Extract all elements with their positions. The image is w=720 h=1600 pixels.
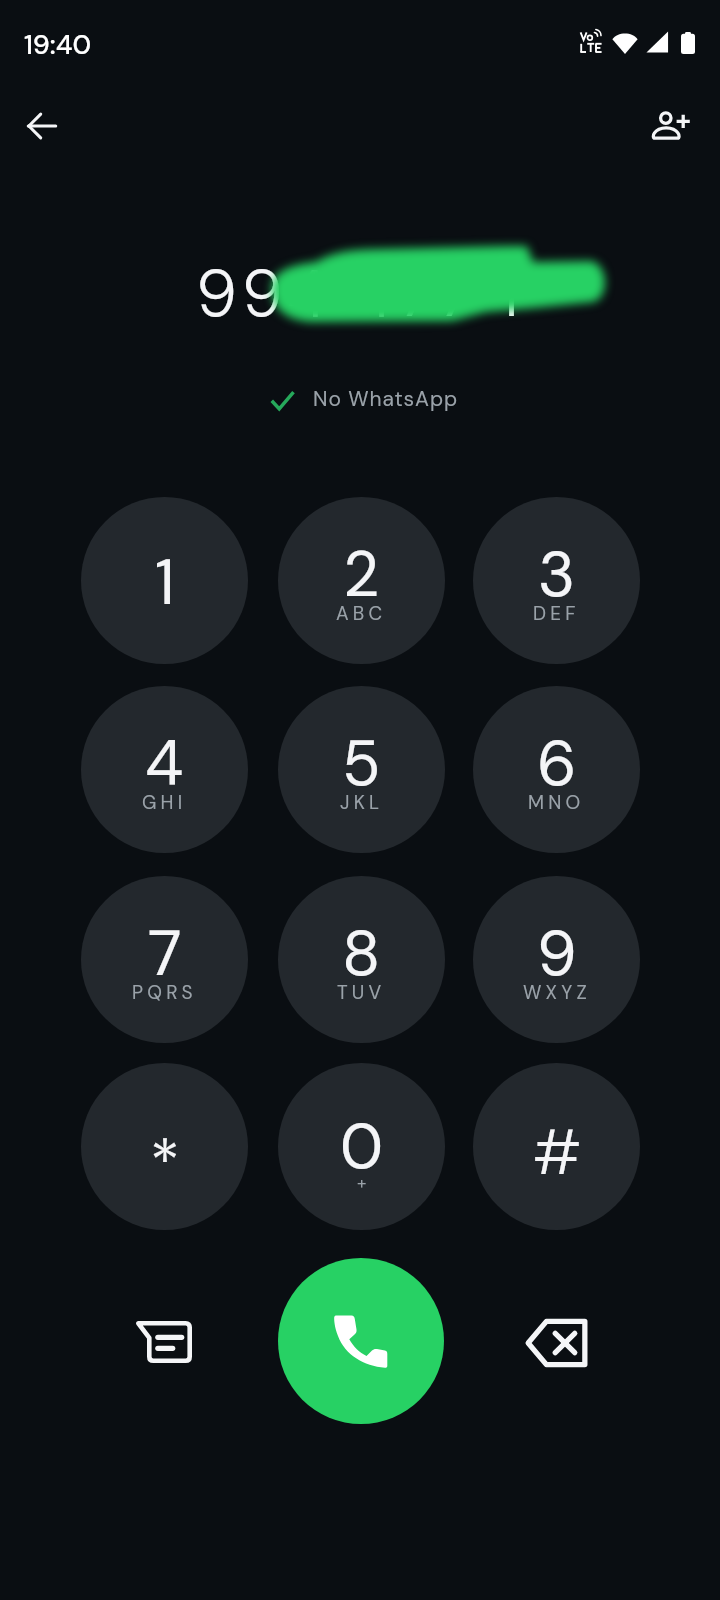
- button[interactable]: 3: [473, 497, 640, 664]
- button[interactable]: Send message: [119, 1297, 209, 1387]
- staticText: #: [532, 1112, 582, 1194]
- staticText: 19:40: [24, 27, 92, 62]
- staticText: WXYZ: [523, 980, 591, 1005]
- staticText: 9: [537, 913, 577, 995]
- staticText: 7: [148, 913, 182, 995]
- staticText: 8: [342, 913, 381, 995]
- staticText: 3: [538, 534, 576, 616]
- staticText: 5: [342, 723, 381, 805]
- staticText: TUV: [337, 980, 386, 1005]
- staticText: ABC: [336, 601, 387, 626]
- button[interactable]: 2: [278, 497, 445, 664]
- button[interactable]: 4: [81, 686, 248, 853]
- button[interactable]: Backspace: [511, 1298, 601, 1388]
- button[interactable]: 0: [278, 1063, 445, 1230]
- button[interactable]: #: [473, 1063, 640, 1230]
- button[interactable]: 7: [81, 876, 248, 1043]
- staticText: 0: [340, 1106, 384, 1188]
- staticText: 994 477 1: [196, 252, 524, 337]
- button[interactable]: 1: [81, 497, 248, 664]
- button[interactable]: *: [81, 1063, 248, 1230]
- button[interactable]: Back: [10, 94, 74, 158]
- staticText: 6: [537, 723, 577, 805]
- staticText: MNO: [528, 790, 585, 815]
- staticText: +: [357, 1172, 367, 1194]
- staticText: No WhatsApp: [313, 385, 458, 412]
- staticText: JKL: [340, 790, 384, 815]
- staticText: PQRS: [132, 980, 197, 1005]
- button[interactable]: 8: [278, 876, 445, 1043]
- button[interactable]: Add contact: [639, 93, 703, 157]
- button[interactable]: 9: [473, 876, 640, 1043]
- staticText: DEF: [533, 601, 580, 626]
- staticText: GHI: [142, 790, 187, 815]
- staticText: 4: [145, 723, 184, 805]
- staticText: *: [150, 1123, 180, 1205]
- staticText: 2: [343, 534, 380, 616]
- staticText: 1: [155, 542, 175, 624]
- button[interactable]: Call: [278, 1258, 444, 1424]
- button[interactable]: 6: [473, 686, 640, 853]
- button[interactable]: 5: [278, 686, 445, 853]
